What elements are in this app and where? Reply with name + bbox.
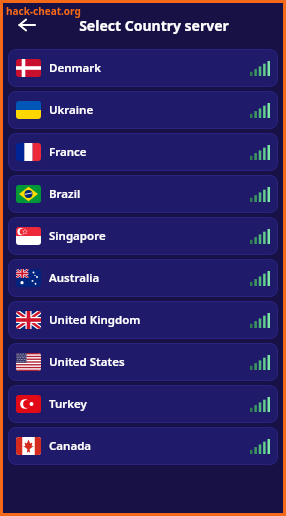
staticText: Denmark (49, 60, 102, 76)
button[interactable]: Turkey (8, 385, 278, 423)
staticText: Turkey (49, 396, 87, 412)
button[interactable]: Denmark (8, 49, 278, 87)
button[interactable]: Singapore (8, 217, 278, 255)
button[interactable]: Brazil (8, 175, 278, 213)
button[interactable]: Canada (8, 427, 278, 465)
button[interactable]: France (8, 133, 278, 171)
button[interactable]: United States (8, 343, 278, 381)
staticText: Australia (49, 270, 100, 286)
staticText: Canada (49, 438, 92, 454)
staticText: United States (49, 354, 125, 370)
staticText: Singapore (49, 228, 106, 244)
button[interactable]: Ukraine (8, 91, 278, 129)
staticText: Select Country server (79, 16, 229, 35)
staticText: Brazil (49, 186, 81, 202)
staticText: hack-cheat.org (6, 4, 81, 18)
button[interactable]: Back (11, 9, 43, 41)
staticText: Ukraine (49, 102, 94, 118)
button[interactable]: United Kingdom (8, 301, 278, 339)
button[interactable]: Australia (8, 259, 278, 297)
staticText: United Kingdom (49, 312, 141, 328)
staticText: France (49, 144, 87, 160)
